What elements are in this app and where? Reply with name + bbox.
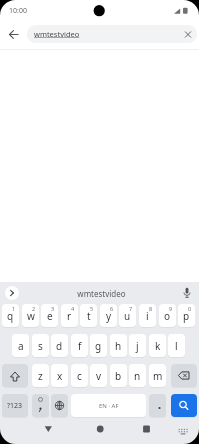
- staticText: v: [96, 369, 102, 383]
- button[interactable]: q: [2, 304, 19, 327]
- staticText: 9: [169, 305, 173, 312]
- staticText: q: [7, 309, 14, 323]
- staticText: o: [164, 309, 171, 323]
- staticText: wmtestvideo: [34, 29, 80, 39]
- button[interactable]: f: [71, 334, 88, 357]
- button[interactable]: o: [159, 304, 176, 327]
- button[interactable]: [180, 26, 197, 43]
- button[interactable]: [51, 394, 68, 417]
- staticText: f: [78, 339, 82, 353]
- staticText: z: [38, 369, 43, 383]
- button[interactable]: [5, 286, 19, 300]
- staticText: y: [106, 309, 112, 323]
- staticText: x: [57, 369, 63, 383]
- staticText: j: [136, 339, 139, 353]
- staticText: 2: [32, 305, 36, 312]
- staticText: i: [146, 309, 149, 323]
- staticText: t: [87, 309, 91, 323]
- button[interactable]: n: [129, 364, 146, 387]
- staticText: l: [175, 339, 178, 353]
- button[interactable]: j: [129, 334, 146, 357]
- staticText: k: [155, 339, 161, 353]
- button[interactable]: k: [149, 334, 166, 357]
- button[interactable]: x: [51, 364, 68, 387]
- button[interactable]: [0, 22, 24, 46]
- button[interactable]: wmtestvideo: [27, 25, 197, 43]
- button[interactable]: d: [51, 334, 68, 357]
- staticText: 3: [51, 305, 55, 312]
- staticText: b: [115, 369, 122, 383]
- staticText: 8: [149, 305, 153, 312]
- staticText: 0: [188, 305, 192, 312]
- staticText: wmtestvideo: [77, 288, 126, 299]
- staticText: 1: [12, 305, 16, 312]
- button[interactable]: [171, 394, 197, 417]
- button[interactable]: [67, 421, 133, 444]
- button[interactable]: b: [110, 364, 127, 387]
- staticText: h: [115, 339, 122, 353]
- button[interactable]: t: [80, 304, 97, 327]
- button[interactable]: h: [110, 334, 127, 357]
- staticText: 5: [90, 305, 94, 312]
- staticText: r: [67, 309, 72, 323]
- staticText: g: [95, 339, 102, 353]
- button[interactable]: u: [119, 304, 136, 327]
- staticText: p: [183, 309, 190, 323]
- button[interactable]: i: [139, 304, 156, 327]
- staticText: ?123: [7, 401, 23, 411]
- button[interactable]: m: [149, 364, 166, 387]
- button[interactable]: r: [61, 304, 78, 327]
- staticText: EN · AF: [99, 402, 119, 410]
- button[interactable]: [149, 394, 166, 417]
- button[interactable]: [2, 364, 28, 387]
- button[interactable]: v: [90, 364, 107, 387]
- staticText: s: [38, 339, 43, 353]
- staticText: d: [56, 339, 63, 353]
- button[interactable]: EN · AF: [71, 394, 146, 417]
- staticText: e: [47, 309, 53, 323]
- button[interactable]: ?123: [2, 394, 28, 417]
- button[interactable]: p: [178, 304, 195, 327]
- staticText: 4: [71, 305, 75, 312]
- staticText: c: [77, 369, 82, 383]
- button[interactable]: s: [32, 334, 49, 357]
- button[interactable]: c: [71, 364, 88, 387]
- button[interactable]: w: [22, 304, 39, 327]
- staticText: a: [18, 339, 24, 353]
- staticText: 6: [110, 305, 114, 312]
- button[interactable]: y: [100, 304, 117, 327]
- button[interactable]: [171, 364, 197, 387]
- staticText: 7: [129, 305, 133, 312]
- button[interactable]: e: [41, 304, 58, 327]
- staticText: w: [27, 309, 35, 323]
- button[interactable]: l: [168, 334, 185, 357]
- staticText: 10:00: [9, 6, 27, 16]
- button[interactable]: g: [90, 334, 107, 357]
- staticText: m: [153, 369, 163, 383]
- button[interactable]: a: [12, 334, 29, 357]
- staticText: n: [134, 369, 141, 383]
- button[interactable]: [32, 394, 49, 417]
- button[interactable]: [133, 421, 199, 444]
- button[interactable]: [0, 421, 67, 444]
- staticText: u: [124, 309, 131, 323]
- button[interactable]: [177, 282, 199, 304]
- button[interactable]: z: [32, 364, 49, 387]
